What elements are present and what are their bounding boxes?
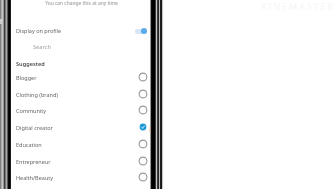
button[interactable]: Selected	[138, 122, 148, 132]
button[interactable]: Not selected	[138, 139, 148, 149]
staticText: Entrepreneur	[16, 158, 51, 165]
button[interactable]: Not selected	[138, 156, 148, 166]
button[interactable]	[11, 119, 151, 136]
button[interactable]: Not selected	[138, 172, 148, 182]
button[interactable]	[11, 85, 151, 102]
button[interactable]	[11, 102, 151, 119]
staticText: Education	[16, 141, 42, 148]
button[interactable]	[11, 69, 151, 86]
staticText: You can change this at any time	[45, 0, 118, 7]
button[interactable]	[11, 135, 151, 152]
button[interactable]	[11, 22, 151, 40]
button[interactable]	[11, 152, 151, 169]
staticText: Community	[16, 107, 47, 114]
button[interactable]	[11, 169, 151, 186]
staticText: Blogger	[16, 74, 37, 81]
staticText: Search	[33, 43, 52, 51]
staticText: Clothing (brand)	[16, 91, 58, 98]
staticText: Suggested	[16, 60, 45, 68]
button[interactable]: Not selected	[138, 72, 148, 82]
button[interactable]: Not selected	[138, 89, 148, 99]
button[interactable]: Display on profile switch	[141, 28, 147, 34]
button[interactable]	[11, 39, 151, 54]
staticText: Digital creator	[16, 124, 53, 131]
staticText: Display on profile	[16, 27, 62, 34]
staticText: Health/Beauty	[16, 174, 54, 181]
button[interactable]: Not selected	[138, 105, 148, 115]
